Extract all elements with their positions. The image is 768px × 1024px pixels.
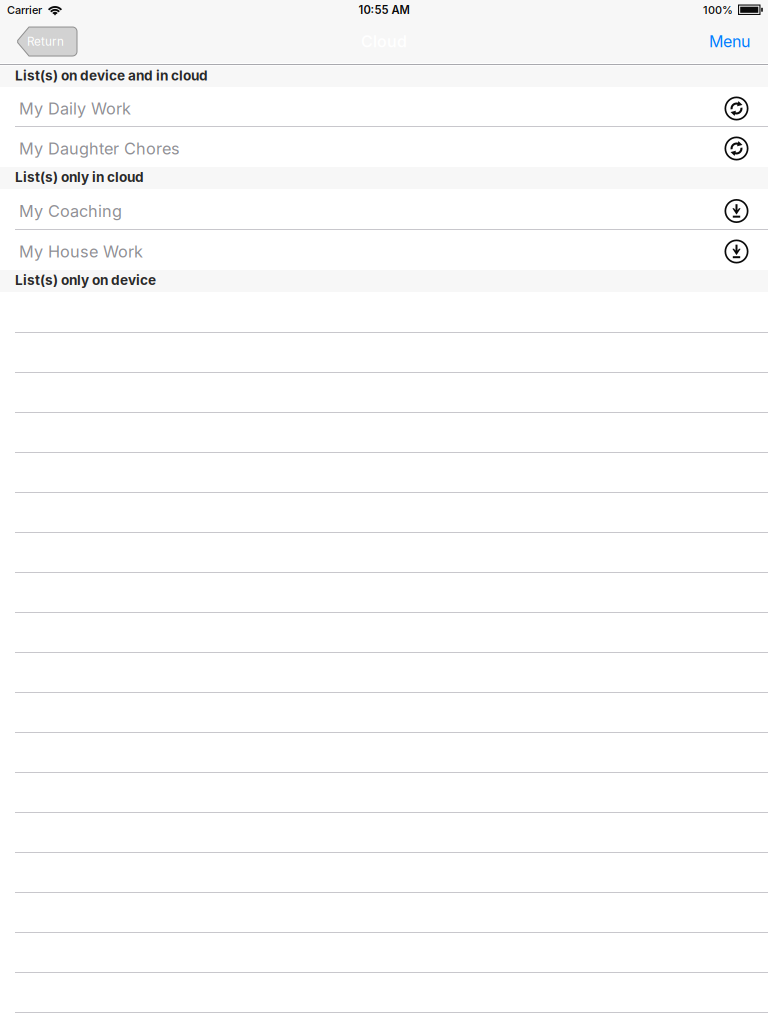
button[interactable]: My Daily Work: [0, 87, 768, 127]
staticText: My Daughter Chores: [19, 139, 180, 158]
button[interactable]: Return: [17, 27, 77, 56]
staticText: 100%: [703, 3, 733, 17]
staticText: My House Work: [19, 242, 143, 261]
staticText: 10:55 AM: [358, 3, 409, 17]
button[interactable]: My House Work: [0, 230, 768, 270]
button[interactable]: My Coaching: [0, 189, 768, 230]
staticText: Carrier: [7, 3, 42, 17]
staticText: My Daily Work: [19, 99, 131, 118]
staticText: List(s) on device and in cloud: [15, 67, 208, 84]
staticText: Menu: [709, 32, 750, 51]
button[interactable]: My Daughter Chores: [0, 127, 768, 167]
staticText: List(s) only in cloud: [15, 169, 144, 185]
staticText: List(s) only on device: [15, 272, 156, 288]
button[interactable]: Menu: [709, 32, 750, 51]
staticText: Return: [27, 34, 64, 49]
staticText: My Coaching: [19, 201, 122, 221]
